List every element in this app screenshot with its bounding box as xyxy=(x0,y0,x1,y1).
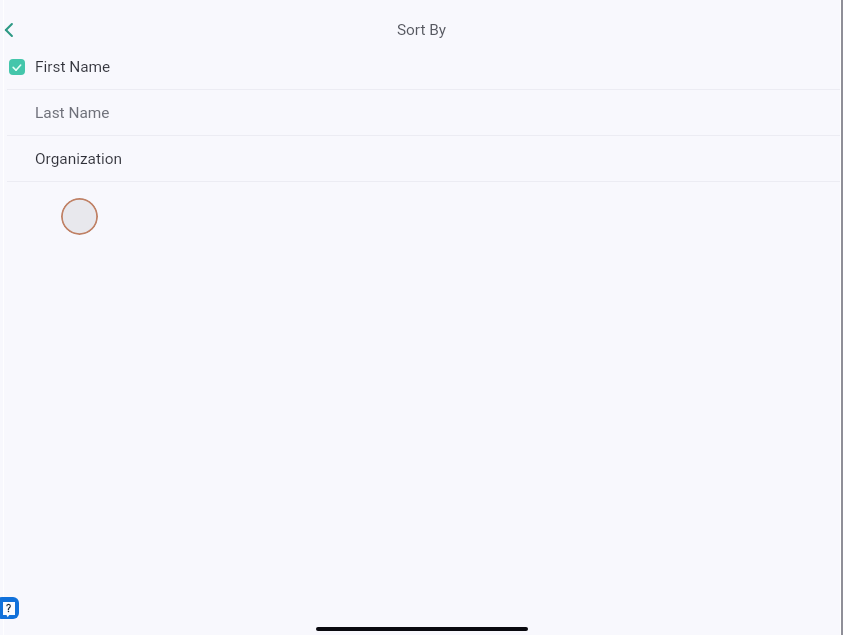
button[interactable]: Back xyxy=(0,8,44,52)
button[interactable]: Profile photo xyxy=(61,198,98,235)
staticText: Organization xyxy=(35,150,122,168)
staticText: First Name xyxy=(35,58,111,76)
button[interactable]: First Name xyxy=(0,44,843,89)
staticText: ? xyxy=(6,602,12,615)
button[interactable]: Help xyxy=(0,597,19,619)
staticText: Last Name xyxy=(35,104,110,122)
button[interactable]: Last Name xyxy=(0,90,843,135)
staticText: Sort By xyxy=(0,21,843,39)
button[interactable]: Organization xyxy=(0,136,843,181)
